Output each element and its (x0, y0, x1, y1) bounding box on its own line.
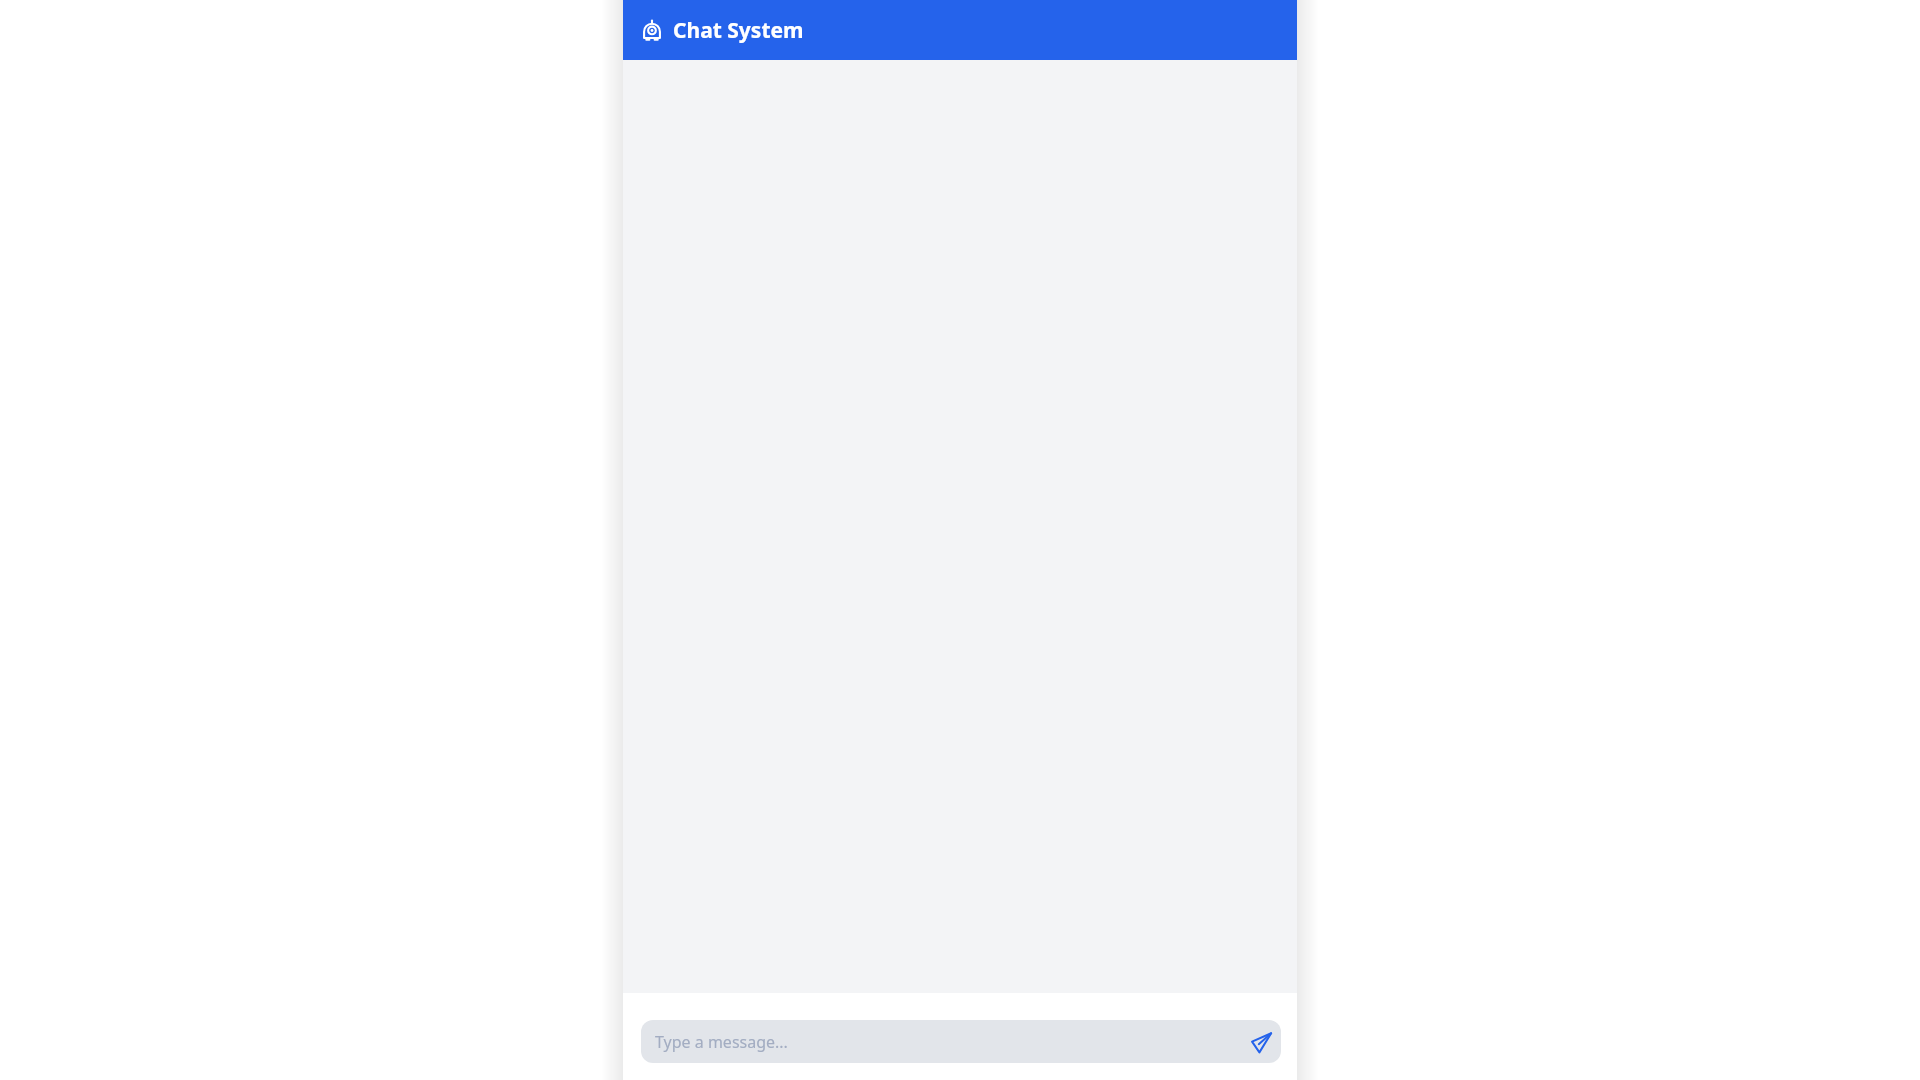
button[interactable]: Type a message... (641, 1020, 1281, 1063)
button[interactable]: Send message (1241, 1022, 1281, 1062)
staticText: Type a message... (655, 1031, 1241, 1053)
other: Chat bot (641, 20, 663, 42)
staticText: Chat System (673, 16, 804, 45)
